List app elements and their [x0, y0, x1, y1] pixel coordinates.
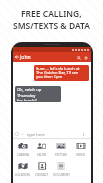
- button[interactable]: CAMERA: [13, 140, 32, 160]
- staticText: VIDEO: [76, 153, 86, 157]
- button[interactable]: PICTURE: [51, 140, 71, 160]
- button[interactable]: VIDEO: [71, 140, 91, 160]
- staticText: SMS/TEXTS & DATA: [13, 20, 91, 32]
- staticText: CONTACT: [35, 173, 49, 177]
- button[interactable]: DOCUMENT: [51, 160, 71, 180]
- staticText: LOCATION: [15, 173, 30, 177]
- button[interactable]: SELFIE: [32, 140, 51, 160]
- button[interactable]: More options: [82, 54, 89, 61]
- staticText: SELFIE: [37, 153, 47, 157]
- staticText: DOCUMENT: [53, 173, 70, 177]
- button[interactable]: CONTACT: [32, 160, 51, 180]
- staticText: PICTURE: [55, 153, 68, 157]
- staticText: FREE CALLING,: [21, 8, 82, 20]
- staticText: type here: [27, 132, 45, 137]
- staticText: Ok, catch up Thursday for lunch?: [17, 87, 59, 101]
- button[interactable]: Back: [14, 54, 20, 60]
- button[interactable]: Search: [75, 54, 82, 61]
- button[interactable]: LOCATION: [13, 160, 32, 180]
- button[interactable]: type here: [15, 130, 89, 138]
- staticText: John: [20, 54, 31, 61]
- staticText: CAMERA: [17, 153, 29, 157]
- staticText: Sure ... let's do lunch at The Golden Ba…: [36, 66, 80, 80]
